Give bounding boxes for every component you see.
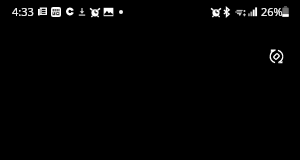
staticText: 4:33 xyxy=(12,4,34,19)
button[interactable]: Show player controls xyxy=(0,0,300,160)
button[interactable]: Auto rotate screen xyxy=(264,44,288,68)
staticText: 26% xyxy=(261,4,283,19)
